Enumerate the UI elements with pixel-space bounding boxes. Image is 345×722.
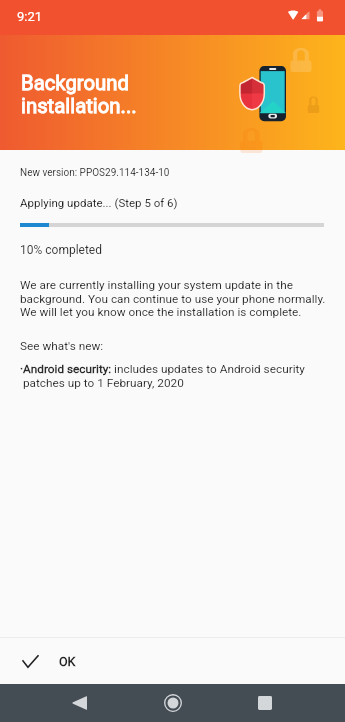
staticText: ·Android security: includes updates to A… [20, 362, 305, 389]
staticText: OK [59, 654, 76, 669]
staticText: New version: PPOS29.114-134-10 [20, 167, 170, 179]
staticText: See what's new: [20, 339, 104, 353]
button[interactable]: Home [144, 684, 202, 722]
button[interactable]: Back [50, 684, 108, 722]
staticText: 10% completed [20, 243, 102, 257]
button[interactable]: Recent apps [236, 684, 294, 722]
staticText: 9:21 [17, 9, 43, 24]
staticText: Applying update... (Step 5 of 6) [20, 196, 178, 209]
button[interactable]: OK [0, 638, 345, 684]
staticText: We are currently installing your system … [20, 278, 326, 318]
staticText: Background installation... [21, 71, 137, 118]
